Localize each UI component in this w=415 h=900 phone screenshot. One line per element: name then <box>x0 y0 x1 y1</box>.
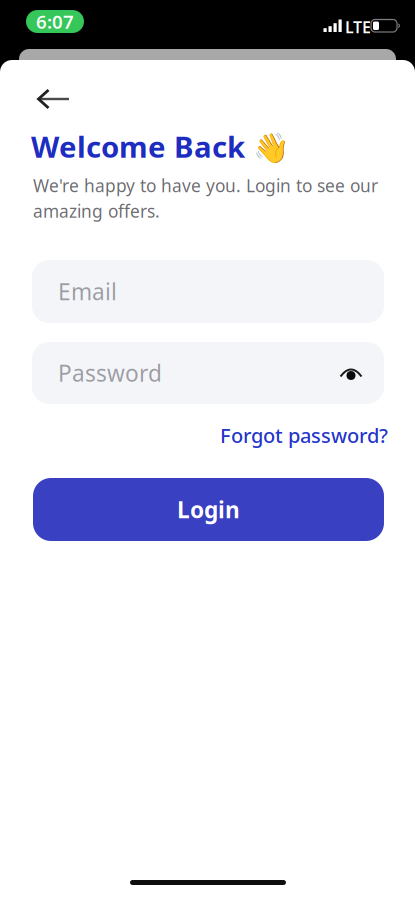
button[interactable] <box>32 83 79 115</box>
staticText: We're happy to have you. Login to see ou… <box>33 174 378 222</box>
staticText: Password <box>58 358 162 388</box>
staticText: Login <box>177 494 240 524</box>
staticText: Welcome Back 👋 <box>31 127 290 166</box>
staticText: Email <box>58 276 117 306</box>
button[interactable]: Email <box>32 260 384 323</box>
staticText: 6:07 <box>36 9 74 34</box>
button[interactable]: Forgot password? <box>220 422 388 449</box>
button[interactable]: Login <box>33 478 384 541</box>
staticText: Forgot password? <box>220 422 388 449</box>
button[interactable]: Password <box>32 342 384 404</box>
staticText: LTE <box>345 16 371 38</box>
